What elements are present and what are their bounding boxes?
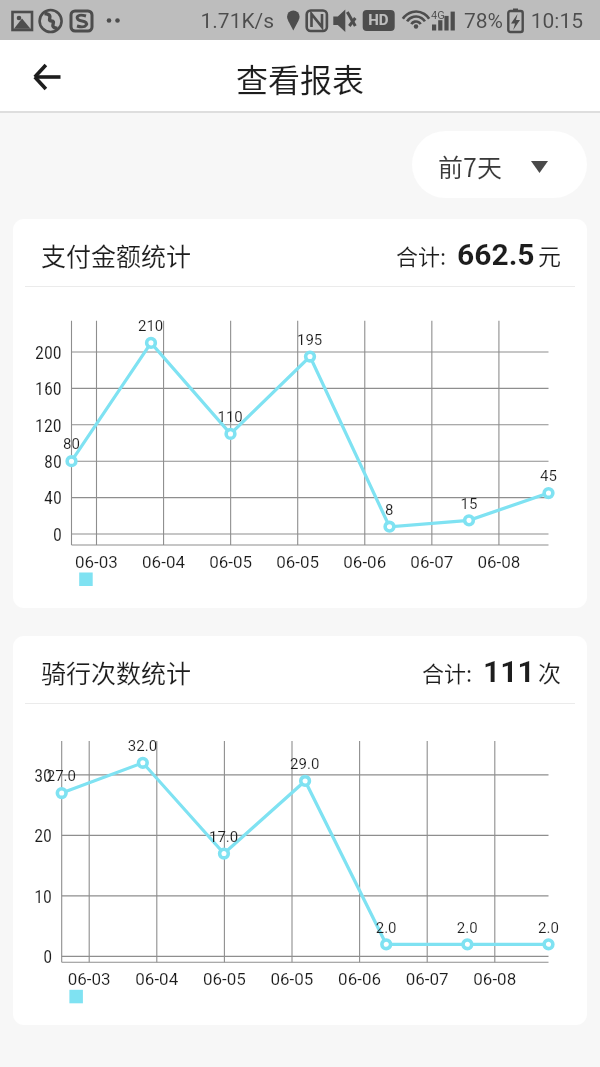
- staticText: 元: [538, 238, 561, 271]
- button[interactable]: 前7天: [412, 131, 587, 198]
- staticText: 合计:: [396, 239, 447, 271]
- staticText: 111: [483, 654, 535, 689]
- staticText: 查看报表: [236, 55, 365, 101]
- staticText: 前7天: [438, 148, 502, 184]
- staticText: 合计:: [422, 656, 473, 688]
- staticText: 骑行次数统计: [41, 654, 192, 690]
- staticText: 支付金额统计: [41, 237, 192, 273]
- button[interactable]: Back: [14, 40, 79, 113]
- staticText: 次: [538, 655, 561, 688]
- staticText: 662.5: [457, 237, 535, 272]
